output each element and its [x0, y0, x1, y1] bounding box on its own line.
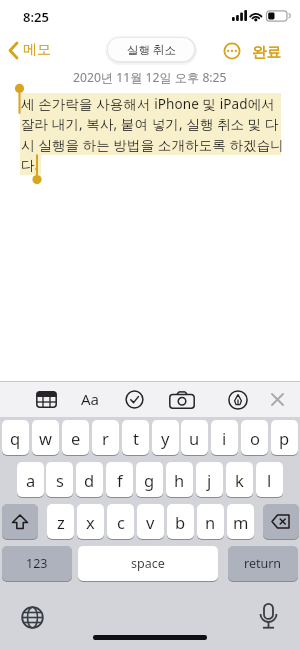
button[interactable]: y: [152, 420, 179, 456]
staticText: 시 실행을 하는 방법을 소개하도록 하겠습니: [21, 136, 284, 154]
staticText: w: [39, 427, 52, 449]
button[interactable]: k: [226, 462, 253, 498]
staticText: 메모: [23, 41, 51, 59]
button[interactable]: 123: [2, 546, 72, 582]
button[interactable]: j: [196, 462, 223, 498]
button[interactable]: i: [211, 420, 238, 456]
staticText: n: [205, 511, 216, 533]
staticText: 잘라 내기, 복사, 붙여 넣기, 실행 취소 및 다: [21, 115, 279, 133]
staticText: u: [189, 427, 200, 449]
staticText: g: [144, 469, 155, 491]
staticText: space: [131, 555, 165, 572]
staticText: o: [250, 427, 260, 449]
button[interactable]: [228, 390, 248, 410]
button[interactable]: w: [32, 420, 59, 456]
staticText: v: [146, 511, 155, 533]
button[interactable]: [169, 391, 195, 409]
staticText: Aa: [81, 389, 100, 409]
staticText: h: [174, 469, 185, 491]
button[interactable]: e: [62, 420, 89, 456]
button[interactable]: p: [271, 420, 298, 456]
button[interactable]: [258, 603, 279, 630]
button[interactable]: r: [92, 420, 119, 456]
staticText: f: [117, 469, 123, 491]
staticText: a: [26, 469, 36, 491]
button[interactable]: 완료: [252, 43, 281, 61]
staticText: 2020년 11월 12일 오후 8:25: [73, 69, 227, 86]
staticText: y: [161, 427, 170, 449]
staticText: c: [117, 511, 125, 533]
button[interactable]: 메모: [8, 40, 51, 60]
button[interactable]: [263, 504, 299, 540]
button[interactable]: h: [166, 462, 193, 498]
button[interactable]: [2, 504, 38, 540]
staticText: d: [84, 469, 95, 491]
button[interactable]: return: [228, 546, 298, 582]
button[interactable]: 실행 취소: [108, 38, 194, 61]
staticText: m: [233, 511, 249, 533]
button[interactable]: Aa: [77, 389, 103, 409]
button[interactable]: u: [181, 420, 208, 456]
staticText: q: [10, 427, 21, 449]
button[interactable]: [36, 391, 57, 408]
staticText: j: [207, 469, 212, 491]
button[interactable]: [223, 42, 241, 60]
staticText: 다.: [21, 156, 39, 174]
staticText: e: [71, 427, 81, 449]
staticText: 세 손가락을 사용해서 iPhone 및 iPad에서: [21, 95, 275, 113]
staticText: return: [244, 555, 282, 572]
button[interactable]: b: [167, 504, 194, 540]
button[interactable]: c: [107, 504, 134, 540]
button[interactable]: x: [77, 504, 104, 540]
staticText: 실행 취소: [127, 42, 176, 58]
button[interactable]: q: [2, 420, 29, 456]
staticText: l: [267, 469, 272, 491]
button[interactable]: v: [137, 504, 164, 540]
staticText: 8:25: [23, 8, 49, 26]
button[interactable]: space: [78, 546, 218, 582]
button[interactable]: l: [256, 462, 283, 498]
staticText: b: [175, 511, 186, 533]
staticText: 123: [26, 555, 48, 572]
button[interactable]: d: [76, 462, 103, 498]
staticText: z: [57, 511, 65, 533]
button[interactable]: t: [122, 420, 149, 456]
button[interactable]: m: [227, 504, 254, 540]
staticText: r: [102, 427, 109, 449]
staticText: s: [56, 469, 64, 491]
staticText: t: [133, 427, 139, 449]
button[interactable]: f: [106, 462, 133, 498]
staticText: k: [235, 469, 244, 491]
button[interactable]: s: [46, 462, 73, 498]
staticText: p: [279, 427, 290, 449]
button[interactable]: o: [241, 420, 268, 456]
staticText: i: [222, 427, 227, 449]
button[interactable]: z: [47, 504, 74, 540]
button[interactable]: [269, 391, 286, 408]
button[interactable]: [125, 390, 144, 409]
button[interactable]: g: [136, 462, 163, 498]
button[interactable]: a: [17, 462, 44, 498]
button[interactable]: [21, 606, 44, 629]
staticText: x: [86, 511, 95, 533]
button[interactable]: n: [197, 504, 224, 540]
